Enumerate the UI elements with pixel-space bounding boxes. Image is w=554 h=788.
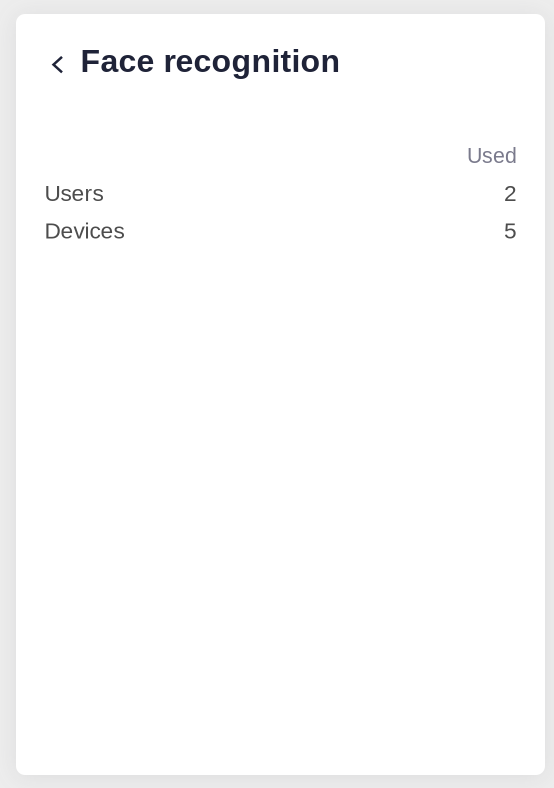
staticText: 2: [504, 181, 517, 206]
button[interactable]: Back: [16, 43, 80, 78]
staticText: Devices: [44, 218, 124, 243]
staticText: Used: [467, 144, 517, 168]
staticText: 5: [504, 218, 517, 243]
staticText: Face recognition: [80, 43, 340, 79]
staticText: Users: [44, 181, 103, 206]
